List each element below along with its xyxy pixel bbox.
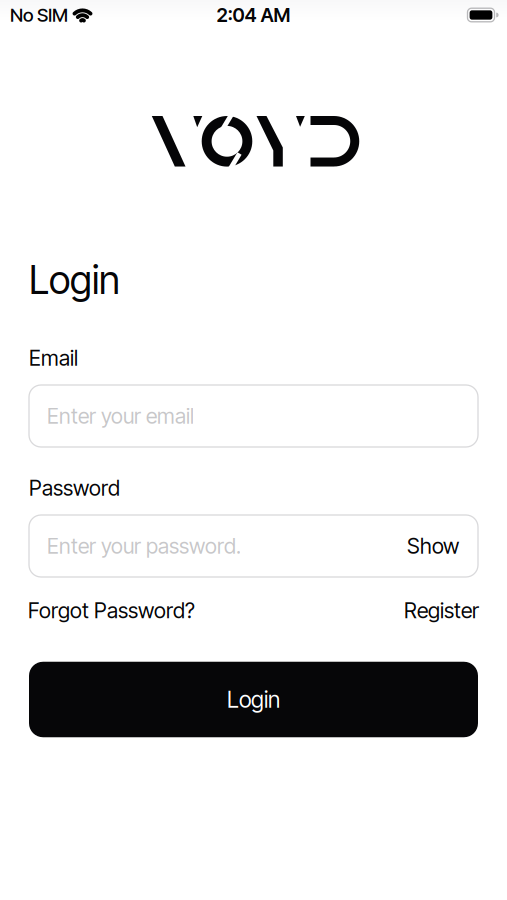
button[interactable]: Login [29,662,478,737]
button[interactable]: Show [407,533,459,559]
button[interactable]: Forgot Password? [28,598,195,623]
staticText: Register [404,598,479,623]
staticText: Show [407,533,459,559]
staticText: Login [29,257,120,303]
staticText: Login [227,686,280,713]
staticText: Email [29,345,78,371]
staticText: Forgot Password? [28,598,195,623]
staticText: Enter your email [47,403,194,429]
staticText: Enter your password. [47,533,241,559]
button[interactable]: Register [404,598,479,623]
staticText: No SIM [10,4,68,26]
staticText: Password [29,475,120,501]
staticText: 2:04 AM [216,3,290,27]
